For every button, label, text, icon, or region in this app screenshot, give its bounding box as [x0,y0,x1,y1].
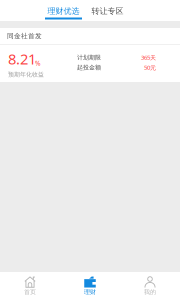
staticText: 我的 [144,288,156,296]
staticText: 理财优选 [47,6,79,16]
button[interactable]: 同金社首发 [0,28,180,82]
staticText: % [35,59,41,68]
staticText: 理财 [84,288,96,296]
button[interactable]: 转让专区 [89,4,126,19]
button[interactable]: 理财优选 [45,4,82,19]
staticText: 计划期限 [77,54,101,61]
staticText: 预期年化收益 [8,71,44,78]
staticText: 首页 [24,288,36,296]
button[interactable]: 首页 [0,272,60,300]
staticText: 起投金额 [77,64,101,71]
staticText: 转让专区 [91,6,123,16]
button[interactable]: 理财 [60,272,120,300]
staticText: 50元 [144,63,156,72]
staticText: 8.21 [8,49,36,69]
button[interactable]: 我的 [120,272,180,300]
staticText: 365天 [141,53,156,62]
staticText: 同金社首发 [7,32,42,40]
